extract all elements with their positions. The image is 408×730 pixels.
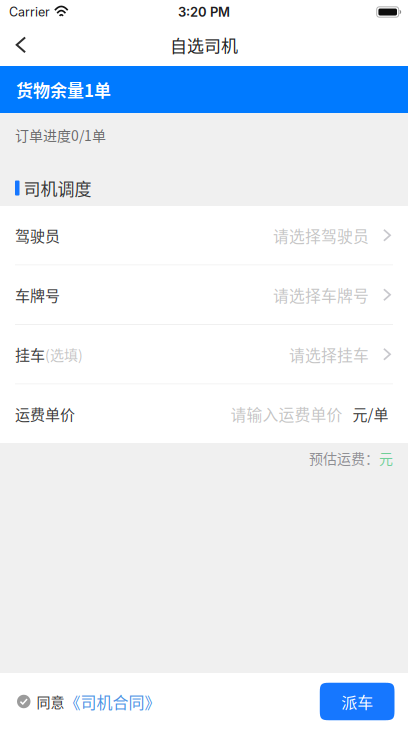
staticText: 请选择挂车	[289, 343, 369, 366]
button[interactable]: Back	[0, 25, 42, 65]
staticText: 请输入运费单价	[230, 402, 342, 425]
staticText: 同意	[36, 691, 64, 712]
staticText: 请选择驾驶员	[273, 224, 369, 247]
staticText: 元	[379, 448, 393, 468]
staticText: 司机调度	[23, 176, 91, 200]
staticText: 请选择车牌号	[273, 283, 369, 306]
staticText: 订单进度0/1单	[15, 125, 106, 145]
button[interactable]: 挂车	[0, 325, 408, 383]
staticText: 预估运费：	[309, 448, 379, 468]
staticText: 挂车	[15, 343, 45, 365]
button[interactable]: 运费单价	[0, 384, 408, 443]
staticText: (选填)	[45, 344, 83, 364]
staticText: Carrier	[9, 4, 50, 19]
staticText: 元/单	[352, 403, 388, 425]
button[interactable]: 车牌号	[0, 265, 408, 324]
staticText: 3:20 PM	[178, 4, 230, 20]
button[interactable]: 同意	[17, 681, 160, 722]
staticText: 货物余量1单	[16, 77, 111, 102]
staticText: 运费单价	[15, 403, 75, 425]
staticText: 车牌号	[15, 284, 60, 306]
staticText: 派车	[341, 690, 373, 713]
staticText: 驾驶员	[15, 224, 60, 246]
staticText: 自选司机	[170, 33, 238, 57]
button[interactable]: 驾驶员	[0, 206, 408, 264]
staticText: 《司机合同》	[64, 690, 160, 713]
button[interactable]: 派车	[320, 683, 394, 720]
